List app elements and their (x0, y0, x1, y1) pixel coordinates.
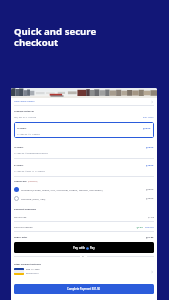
button[interactable]: visa •••• 4242 (11, 268, 157, 275)
staticText: 18 Hours (14, 146, 24, 149)
staticText: $40.00 (146, 197, 154, 200)
button[interactable]: Pay with (14, 242, 154, 253)
button[interactable]: 18 Hours (11, 141, 157, 158)
button[interactable]: Remove (145, 225, 154, 228)
button[interactable]: Complete Payment $31.50 (14, 284, 154, 294)
staticText: 11:30AM → Tomorrow 5:30AM (14, 151, 48, 154)
staticText: 10 Hours (17, 127, 27, 130)
button[interactable]: View Facility Details (11, 98, 157, 105)
staticText: Order Total (14, 235, 28, 238)
staticText: Pay with (73, 246, 86, 250)
staticText: Service Fee (14, 215, 27, 218)
staticText: Other Payment Methods (14, 263, 41, 266)
staticText: visa •••• 4242 (26, 268, 40, 271)
staticText: or (82, 255, 85, 258)
staticText: Expires 08/27 (26, 272, 39, 275)
staticText: Payment Summary (14, 207, 37, 210)
staticText: Vehicle Size (14, 180, 27, 183)
staticText: View Facility Details (14, 100, 35, 103)
staticText: 11:30AM → Oct 11 11:30AM (14, 169, 45, 172)
button[interactable]: 10 Hours (14, 122, 154, 138)
staticText: -$4.50 (136, 225, 143, 228)
staticText: (required) (28, 180, 38, 183)
other: Open (150, 270, 154, 274)
button[interactable]: 24 Hours (11, 159, 157, 176)
staticText: 11:30AM → 11:30PM (17, 132, 40, 135)
staticText: Discount applied (14, 225, 33, 228)
staticText: Quick and secure checkout (14, 25, 97, 49)
other: Open (150, 100, 154, 104)
staticText: Pay (89, 246, 95, 250)
staticText: $46.00 (146, 164, 154, 167)
staticText: $31.50 (146, 235, 154, 238)
staticText: Complete Payment $31.50 (67, 287, 101, 291)
button[interactable]: Standard (Coupe, Sedan, SUV, Crossover, … (11, 185, 157, 194)
staticText: 24 Hours (14, 164, 24, 167)
staticText: Thu, Oct 10 → 11:30 AM (14, 116, 37, 119)
staticText: $30.00 (146, 188, 154, 191)
staticText: $1.50 (148, 215, 154, 218)
button[interactable]: Oversize (Truck, Van) (11, 194, 157, 203)
staticText: Oversize (Truck, Van) (21, 197, 46, 200)
staticText: $36.00 (146, 146, 154, 149)
staticText: Available Rates For (14, 110, 34, 113)
staticText: $30.00 (143, 127, 151, 130)
button[interactable]: Edit Times (143, 116, 154, 119)
staticText: Standard (Coupe, Sedan, SUV, Crossover, … (21, 188, 103, 191)
